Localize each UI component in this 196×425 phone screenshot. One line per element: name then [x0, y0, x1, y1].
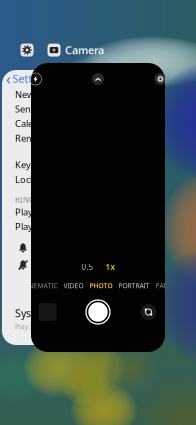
staticText: Reminder Alerts	[15, 132, 84, 144]
button[interactable]: 0.5	[81, 261, 93, 272]
button[interactable]: PORTRAIT	[118, 281, 149, 290]
staticText: 0.5	[81, 261, 93, 272]
button[interactable]: Lock Sound	[15, 172, 124, 187]
button[interactable]: ‹	[2, 70, 124, 345]
staticText: Play Sounds and Haptics	[15, 322, 92, 331]
staticText: Sent Mail	[15, 103, 53, 115]
staticText: Calendar Alerts	[15, 117, 80, 130]
staticText: ‹	[6, 68, 11, 89]
button[interactable]: Calendar Alerts	[15, 116, 124, 131]
button[interactable]: Shutter	[85, 299, 111, 325]
staticText: RING / SILENT	[15, 194, 67, 205]
staticText: PHOTO	[89, 281, 112, 290]
button[interactable]: Flip camera	[139, 303, 157, 321]
staticText: PORTRAIT	[118, 281, 149, 290]
staticText: Play Haptics in Sile	[15, 220, 92, 233]
button[interactable]: Play Haptics in Ring	[15, 205, 124, 219]
button[interactable]: 1x	[105, 261, 114, 272]
staticText: Play Haptics in Ring	[15, 206, 98, 218]
staticText: 1x	[105, 261, 114, 272]
button[interactable]: 0.5	[31, 63, 165, 352]
button[interactable]: VIDEO	[63, 281, 83, 290]
staticText: VIDEO	[63, 281, 83, 290]
staticText: Camera	[65, 43, 104, 57]
button[interactable]: Photo library	[38, 303, 56, 321]
staticText: CINEMATIC	[22, 281, 57, 290]
button[interactable]: Keyboard Clicks	[15, 157, 124, 172]
button[interactable]: More camera options	[90, 71, 106, 87]
button[interactable]: CINEMATIC	[22, 281, 57, 290]
button[interactable]: Camera settings	[152, 71, 168, 87]
button[interactable]: Sent Mail	[15, 102, 124, 116]
button[interactable]: Reminder Alerts	[15, 131, 124, 145]
staticText: New Mail	[15, 88, 53, 100]
button[interactable]: PANO	[155, 281, 173, 290]
button[interactable]: Play Haptics in Sile	[15, 219, 124, 234]
staticText: Keyboard Clicks	[15, 158, 83, 171]
button[interactable]: Settings	[20, 43, 34, 57]
staticText: Lock Sound	[15, 173, 66, 185]
button[interactable]: PHOTO	[89, 281, 112, 290]
button[interactable]: Camera	[47, 43, 104, 57]
button[interactable]: New Mail	[15, 87, 124, 102]
button[interactable]: ‹	[2, 70, 124, 87]
staticText: System Haptics	[15, 306, 92, 320]
button[interactable]: Flash	[27, 71, 43, 87]
staticText: PANO	[155, 281, 173, 290]
staticText: Settings	[12, 71, 54, 86]
